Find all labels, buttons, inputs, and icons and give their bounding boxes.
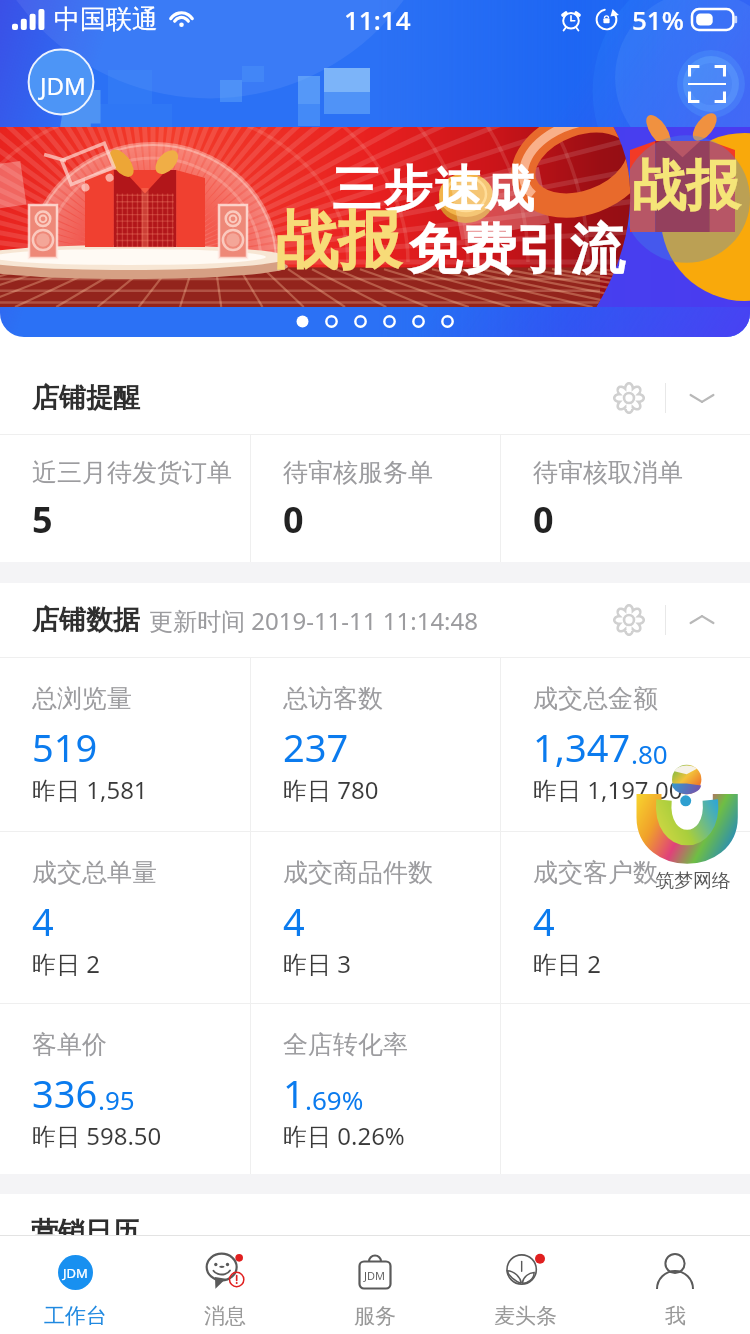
- staticText: 近三月待发货订单: [32, 457, 232, 488]
- staticText: 待审核取消单: [533, 457, 683, 488]
- staticText: 昨日 0.26%: [283, 1119, 405, 1152]
- button[interactable]: 待审核服务单: [251, 435, 500, 562]
- button[interactable]: Expand: [678, 374, 726, 422]
- staticText: .80: [631, 736, 668, 771]
- staticText: 店铺提醒: [32, 381, 140, 415]
- staticText: 店铺数据: [32, 603, 140, 637]
- staticText: JDM: [63, 1264, 88, 1282]
- button[interactable]: 成交商品件数: [251, 832, 500, 1003]
- button[interactable]: Settings: [605, 374, 653, 422]
- button[interactable]: 近三月待发货订单: [0, 435, 250, 562]
- staticText: 昨日 2: [533, 947, 601, 980]
- staticText: 成交总金额: [533, 683, 658, 714]
- button[interactable]: 消息: [150, 1236, 300, 1334]
- staticText: 51%: [632, 2, 684, 37]
- staticText: 工作台: [44, 1303, 107, 1329]
- staticText: 战报: [632, 152, 740, 220]
- staticText: 我: [665, 1303, 686, 1329]
- button[interactable]: 成交总金额: [501, 658, 750, 831]
- button[interactable]: 成交客户数: [501, 832, 750, 1003]
- staticText: 0: [533, 495, 554, 544]
- staticText: 更新时间 2019-11-11 11:14:48: [149, 604, 478, 637]
- staticText: 成交客户数: [533, 857, 658, 888]
- staticText: 成交总单量: [32, 857, 157, 888]
- button[interactable]: 总访客数: [251, 658, 500, 831]
- staticText: 1: [283, 1067, 305, 1119]
- button[interactable]: JDM: [0, 1236, 150, 1334]
- staticText: JDM: [364, 1268, 386, 1283]
- button[interactable]: Settings: [605, 596, 653, 644]
- button[interactable]: 待审核取消单: [501, 435, 750, 562]
- button[interactable]: 我: [600, 1236, 750, 1334]
- staticText: 昨日 1,581: [32, 773, 148, 806]
- staticText: 5: [32, 495, 53, 544]
- staticText: 4: [533, 895, 555, 947]
- staticText: 成交商品件数: [283, 857, 433, 888]
- staticText: 昨日 1,197.00: [533, 773, 683, 806]
- staticText: 中国联通: [54, 3, 158, 36]
- staticText: 麦头条: [494, 1303, 557, 1329]
- staticText: 消息: [204, 1303, 246, 1329]
- button[interactable]: 成交总单量: [0, 832, 250, 1003]
- button[interactable]: JDM: [300, 1236, 450, 1334]
- staticText: 237: [283, 721, 349, 773]
- staticText: 筑梦网络: [655, 869, 731, 893]
- button[interactable]: Collapse: [678, 596, 726, 644]
- staticText: .69%: [305, 1082, 364, 1117]
- staticText: JDM: [40, 69, 86, 102]
- staticText: 4: [32, 895, 54, 947]
- button[interactable]: 总浏览量: [0, 658, 250, 831]
- staticText: 昨日 2: [32, 947, 100, 980]
- staticText: .95: [98, 1082, 135, 1117]
- staticText: 11:14: [344, 2, 411, 37]
- button[interactable]: 全店转化率: [251, 1004, 500, 1174]
- staticText: 三步速成: [331, 159, 535, 221]
- staticText: 免费引流: [408, 216, 624, 284]
- staticText: 总访客数: [283, 683, 383, 714]
- staticText: 昨日 3: [283, 947, 351, 980]
- staticText: 4: [283, 895, 305, 947]
- staticText: 昨日 780: [283, 773, 379, 806]
- staticText: 待审核服务单: [283, 457, 433, 488]
- button[interactable]: Promotion banner: [0, 127, 750, 307]
- button[interactable]: 客单价: [0, 1004, 250, 1174]
- staticText: 全店转化率: [283, 1029, 408, 1060]
- staticText: 1,347: [533, 721, 631, 773]
- staticText: 519: [32, 721, 98, 773]
- staticText: 客单价: [32, 1029, 107, 1060]
- button[interactable]: 麦头条: [450, 1236, 600, 1334]
- button[interactable]: Scan QR code: [664, 41, 750, 127]
- staticText: 0: [283, 495, 304, 544]
- staticText: 336: [32, 1067, 98, 1119]
- button[interactable]: Shop avatar: [20, 42, 106, 128]
- staticText: 昨日 598.50: [32, 1119, 162, 1152]
- staticText: 服务: [354, 1303, 396, 1329]
- staticText: 营销日历: [31, 1215, 139, 1249]
- staticText: 战报: [275, 201, 401, 280]
- staticText: 总浏览量: [32, 683, 132, 714]
